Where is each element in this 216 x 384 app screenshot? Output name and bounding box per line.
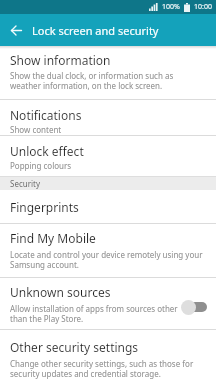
staticText: Show the dual clock, or information such… bbox=[10, 70, 174, 91]
staticText: 100% bbox=[162, 2, 180, 12]
staticText: Unknown sources bbox=[10, 284, 111, 300]
button[interactable]: Unknown sources bbox=[0, 278, 216, 330]
button[interactable]: Other security settings bbox=[0, 330, 216, 381]
staticText: Lock screen and security bbox=[32, 23, 159, 38]
staticText: Locate and control your device remotely … bbox=[10, 249, 203, 270]
staticText: 10:00 bbox=[194, 2, 212, 12]
staticText: Find My Mobile bbox=[10, 230, 96, 246]
staticText: Unlock effect bbox=[10, 143, 84, 159]
button[interactable]: Fingerprints bbox=[0, 190, 216, 224]
staticText: Allow installation of apps from sources … bbox=[10, 303, 178, 324]
staticText: Other security settings bbox=[10, 339, 139, 355]
button[interactable]: Notifications bbox=[0, 100, 216, 136]
staticText: Show information bbox=[10, 52, 111, 68]
button[interactable]: Find My Mobile bbox=[0, 224, 216, 278]
staticText: Change other security settings, such as … bbox=[10, 358, 194, 379]
staticText: Fingerprints bbox=[10, 199, 79, 215]
staticText: Security bbox=[10, 178, 41, 189]
staticText: Popping colours bbox=[10, 160, 72, 171]
button[interactable]: Unlock effect bbox=[0, 136, 216, 176]
staticText: Show content bbox=[10, 124, 62, 135]
staticText: Notifications bbox=[10, 107, 82, 123]
button[interactable]: Show information bbox=[0, 46, 216, 100]
button[interactable] bbox=[0, 14, 32, 46]
